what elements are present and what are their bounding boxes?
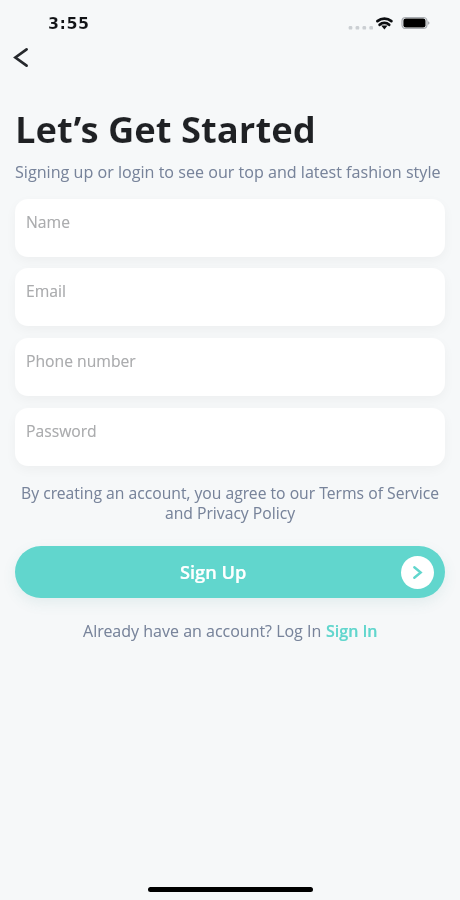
staticText: Name (26, 211, 70, 232)
staticText: By creating an account, you agree to our… (14, 482, 446, 524)
staticText: 3:55 (48, 14, 90, 32)
button[interactable]: Already have an account? Log In (83, 620, 326, 642)
button[interactable]: Sign Up (15, 546, 445, 598)
staticText: Signing up or login to see our top and l… (15, 161, 441, 183)
staticText: Phone number (26, 350, 136, 371)
staticText: Let’s Get Started (15, 104, 316, 154)
button[interactable]: Name (15, 199, 445, 257)
button[interactable]: Sign In (326, 620, 378, 642)
button[interactable]: Email (15, 268, 445, 326)
button[interactable]: Password (15, 408, 445, 466)
staticText: Password (26, 420, 97, 441)
button[interactable]: Back (1, 37, 41, 77)
staticText: Sign Up (180, 560, 247, 585)
staticText: Email (26, 280, 66, 301)
button[interactable]: Phone number (15, 338, 445, 396)
